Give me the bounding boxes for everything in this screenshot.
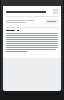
- button[interactable]: More options: [53, 9, 58, 14]
- button[interactable]: [45, 19, 58, 24]
- button[interactable]: More options: [6, 9, 58, 14]
